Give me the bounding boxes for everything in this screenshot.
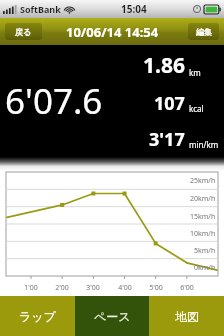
staticText: 3'17 (149, 127, 185, 152)
staticText: 5km/h (194, 246, 216, 256)
staticText: 6'07.6 (5, 77, 103, 125)
staticText: 6'00 (180, 283, 194, 293)
staticText: 25km/h (190, 176, 216, 186)
staticText: 15km/h (190, 212, 216, 222)
button[interactable]: ラップ (0, 296, 75, 336)
staticText: 地図 (175, 309, 199, 324)
staticText: 5'00 (149, 283, 163, 293)
staticText: min/km (189, 139, 219, 150)
button[interactable]: 戻る (5, 23, 42, 40)
staticText: kcal (189, 103, 204, 114)
staticText: ペース (94, 309, 131, 324)
staticText: SoftBank (20, 3, 61, 15)
staticText: 1.86 (143, 51, 185, 80)
staticText: 編集 (196, 27, 212, 37)
staticText: km (189, 67, 201, 78)
button[interactable]: 編集 (188, 23, 219, 40)
staticText: 10km/h (190, 229, 216, 239)
staticText: 10/06/14 14:54 (66, 23, 159, 41)
staticText: 15:04 (121, 2, 147, 16)
staticText: 4'00 (118, 283, 132, 293)
button[interactable]: 地図 (149, 296, 224, 336)
staticText: 1'00 (24, 283, 38, 293)
staticText: 戻る (15, 27, 32, 37)
staticText: 2'00 (55, 283, 69, 293)
button[interactable]: ペース (75, 296, 149, 336)
staticText: 3'00 (86, 283, 100, 293)
staticText: 0km/h (194, 263, 216, 273)
staticText: ラップ (19, 309, 56, 324)
staticText: 107 (154, 91, 185, 116)
staticText: 20km/h (190, 194, 216, 204)
